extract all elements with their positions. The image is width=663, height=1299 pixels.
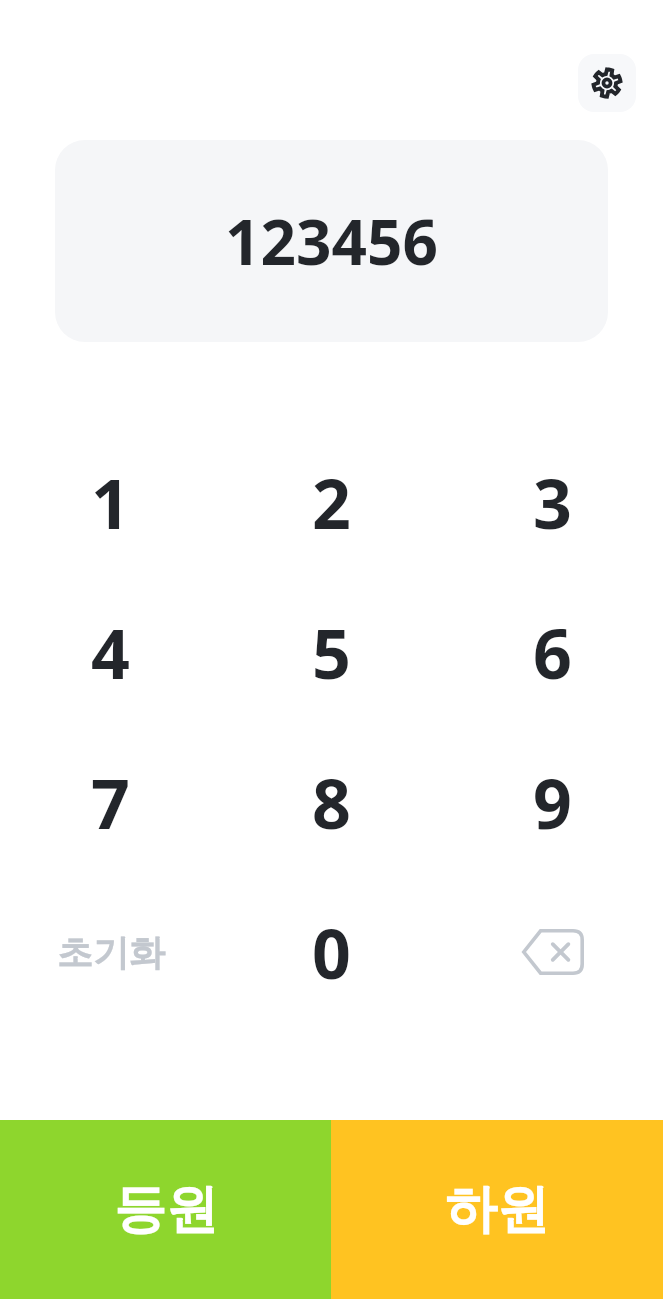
staticText: 123456: [225, 199, 438, 283]
button[interactable]: 0: [221, 877, 442, 1027]
staticText: 4: [91, 606, 130, 699]
staticText: 9: [533, 756, 572, 849]
staticText: 6: [533, 606, 572, 699]
staticText: 7: [91, 756, 130, 849]
button[interactable]: 등원: [0, 1120, 331, 1299]
button[interactable]: 123456: [55, 140, 608, 342]
button[interactable]: 6: [442, 577, 663, 727]
staticText: 등원: [114, 1177, 218, 1243]
staticText: 5: [312, 606, 351, 699]
staticText: 하원: [445, 1177, 549, 1243]
staticText: 1: [91, 456, 130, 549]
button[interactable]: 2: [221, 427, 442, 577]
button[interactable]: 하원: [331, 1120, 663, 1299]
button[interactable]: Settings: [578, 54, 636, 112]
button[interactable]: 초기화: [0, 877, 221, 1027]
button[interactable]: 4: [0, 577, 221, 727]
staticText: 2: [312, 456, 351, 549]
button[interactable]: Backspace: [442, 877, 663, 1027]
button[interactable]: 9: [442, 727, 663, 877]
staticText: 8: [312, 756, 351, 849]
staticText: 3: [533, 456, 572, 549]
button[interactable]: 5: [221, 577, 442, 727]
button[interactable]: 7: [0, 727, 221, 877]
button[interactable]: 8: [221, 727, 442, 877]
button[interactable]: 1: [0, 427, 221, 577]
staticText: 초기화: [57, 930, 165, 975]
button[interactable]: 3: [442, 427, 663, 577]
staticText: 0: [312, 906, 351, 999]
